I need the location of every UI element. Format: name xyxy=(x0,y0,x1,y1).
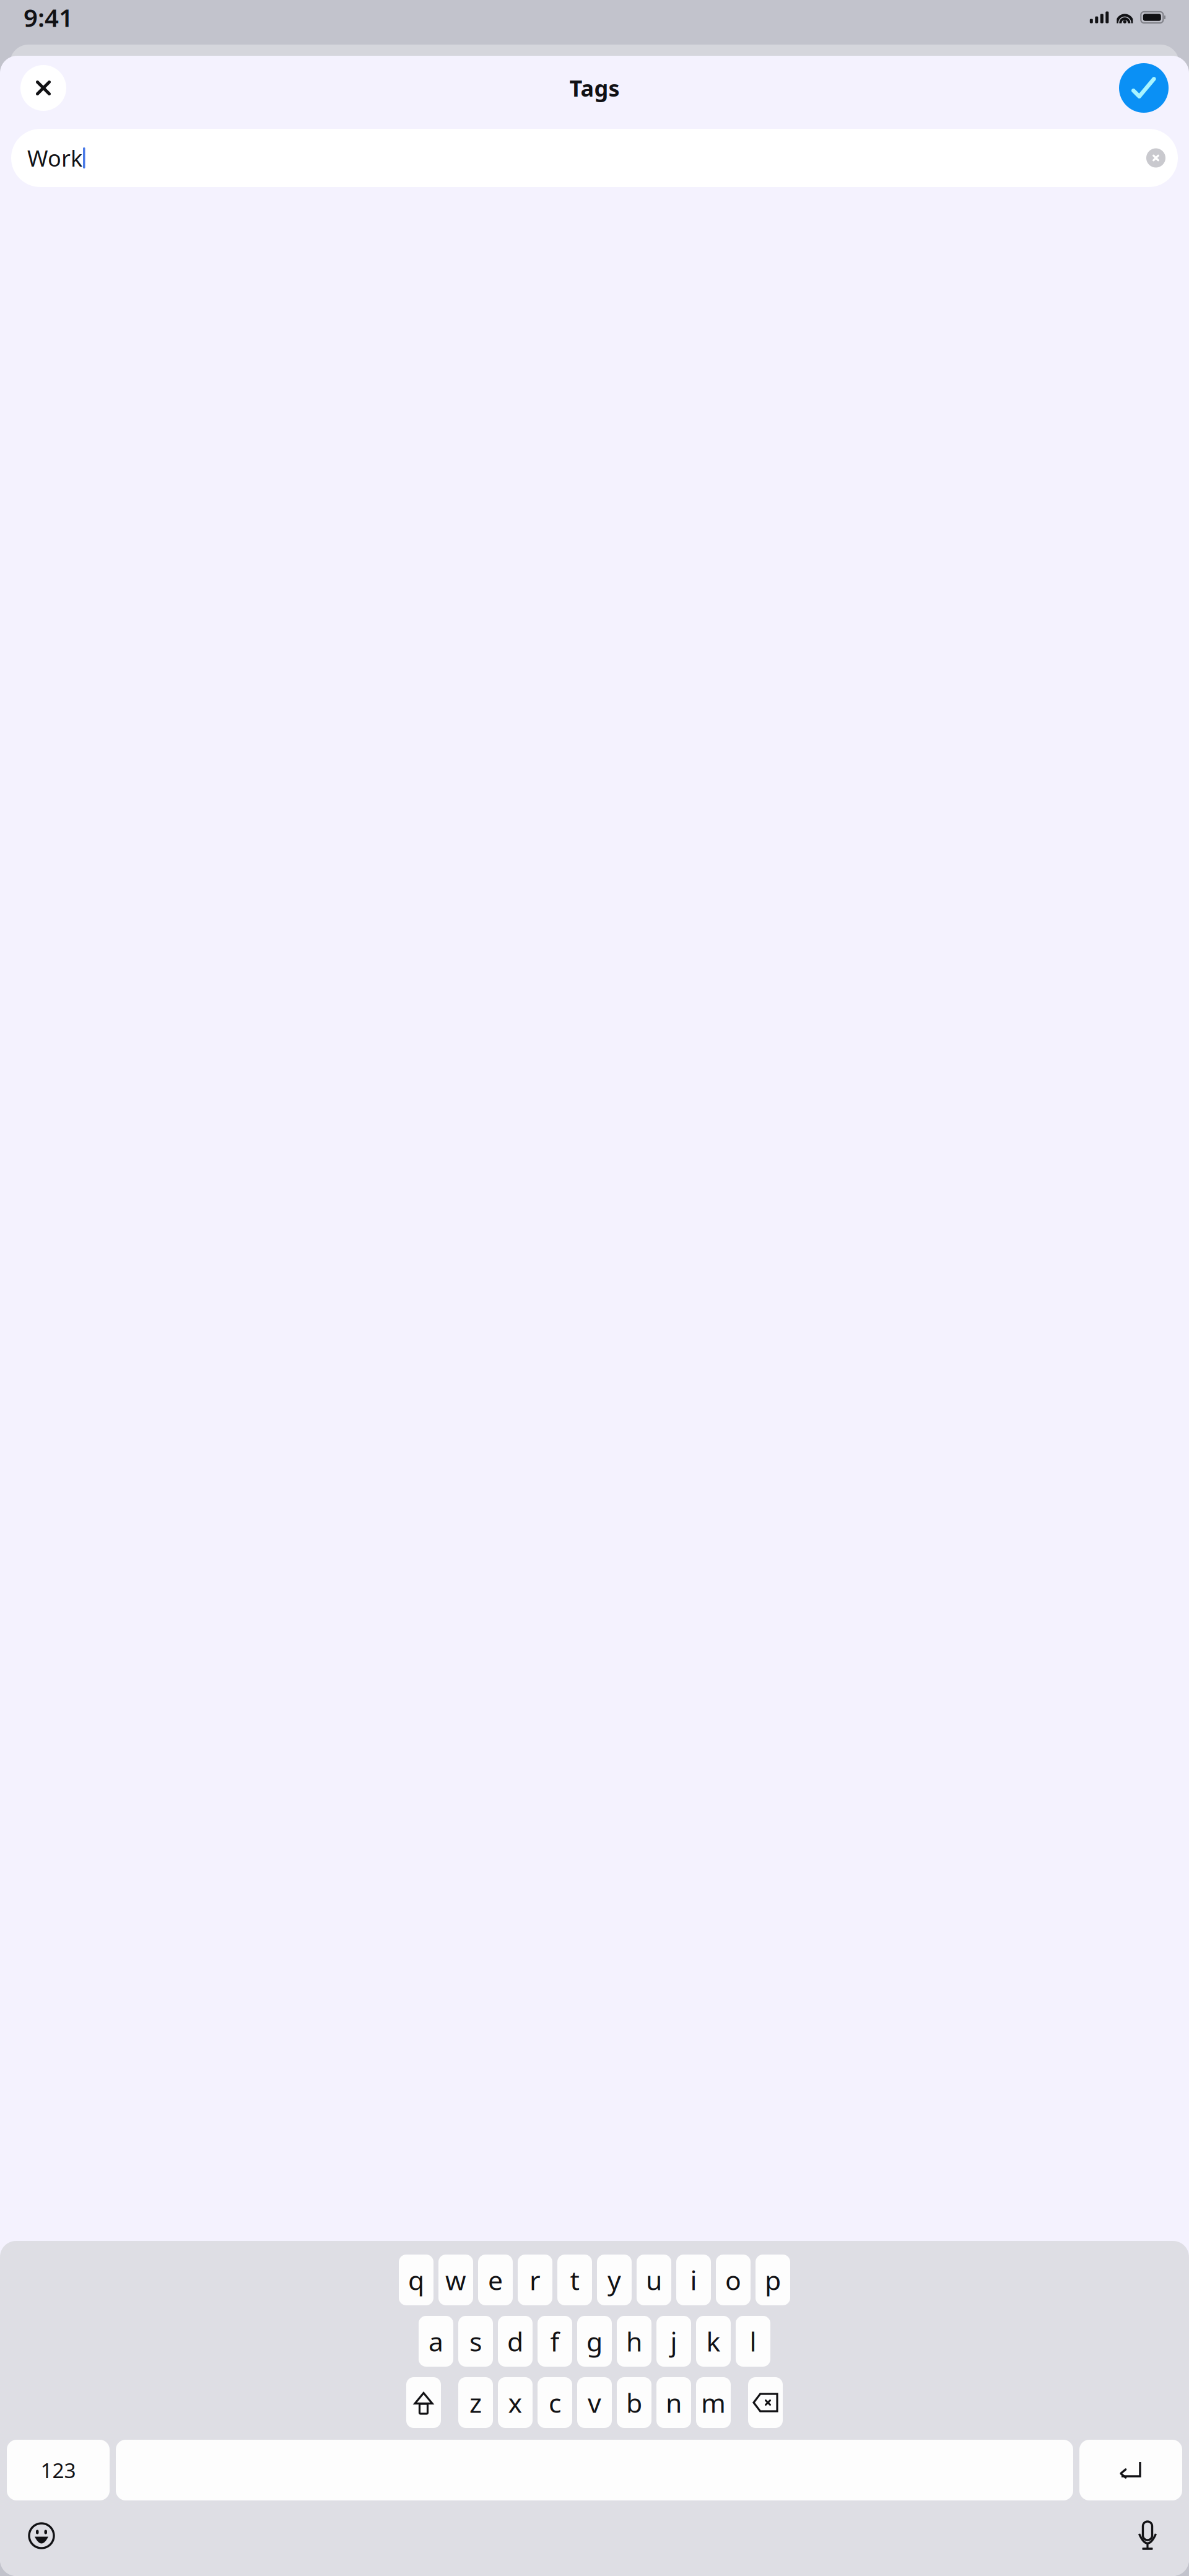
staticText: j xyxy=(670,2324,677,2359)
button[interactable]: r xyxy=(518,2255,552,2305)
button[interactable]: Delete xyxy=(748,2377,783,2428)
staticText: 123 xyxy=(41,2456,76,2484)
button[interactable]: k xyxy=(696,2316,731,2367)
button[interactable]: u xyxy=(637,2255,671,2305)
staticText: m xyxy=(701,2385,726,2420)
button[interactable]: t xyxy=(557,2255,592,2305)
button[interactable]: i xyxy=(676,2255,711,2305)
staticText: d xyxy=(507,2324,523,2359)
button[interactable]: Close xyxy=(20,65,66,111)
button[interactable]: s xyxy=(458,2316,493,2367)
button[interactable]: Emoji keyboard xyxy=(22,2517,61,2555)
staticText: Work xyxy=(27,143,82,173)
button[interactable]: Dictation xyxy=(1128,2517,1167,2555)
button[interactable]: m xyxy=(696,2377,731,2428)
button[interactable]: h xyxy=(617,2316,651,2367)
staticText: g xyxy=(586,2324,603,2359)
button[interactable]: Done xyxy=(1119,63,1169,113)
button[interactable]: p xyxy=(756,2255,790,2305)
button[interactable]: d xyxy=(498,2316,533,2367)
staticText: t xyxy=(570,2262,579,2298)
staticText: a xyxy=(429,2324,443,2359)
button[interactable]: g xyxy=(577,2316,612,2367)
button[interactable]: v xyxy=(577,2377,612,2428)
staticText: 9:41 xyxy=(24,1,73,34)
button[interactable]: f xyxy=(538,2316,572,2367)
staticText: c xyxy=(549,2385,561,2420)
staticText: u xyxy=(646,2262,662,2298)
button[interactable]: b xyxy=(617,2377,651,2428)
button[interactable]: Clear text xyxy=(1146,148,1165,168)
staticText: o xyxy=(725,2262,741,2298)
button[interactable]: y xyxy=(597,2255,632,2305)
staticText: w xyxy=(445,2262,466,2298)
button[interactable]: j xyxy=(656,2316,691,2367)
staticText: f xyxy=(550,2324,560,2359)
button[interactable]: o xyxy=(716,2255,751,2305)
button[interactable]: e xyxy=(478,2255,513,2305)
button[interactable]: a xyxy=(419,2316,453,2367)
staticText: k xyxy=(706,2324,721,2359)
button[interactable]: l xyxy=(736,2316,770,2367)
button[interactable]: Return xyxy=(1079,2440,1182,2500)
staticText: l xyxy=(750,2324,756,2359)
button[interactable]: c xyxy=(538,2377,572,2428)
staticText: p xyxy=(765,2262,781,2298)
staticText: v xyxy=(588,2385,601,2420)
button[interactable]: 123 xyxy=(7,2440,110,2500)
staticText: i xyxy=(690,2262,697,2298)
button[interactable]: q xyxy=(399,2255,433,2305)
staticText: n xyxy=(666,2385,682,2420)
staticText: e xyxy=(488,2262,503,2298)
button[interactable]: z xyxy=(458,2377,493,2428)
staticText: b xyxy=(626,2385,642,2420)
button[interactable]: x xyxy=(498,2377,533,2428)
staticText: s xyxy=(469,2324,482,2359)
staticText: h xyxy=(626,2324,642,2359)
staticText: z xyxy=(469,2385,482,2420)
staticText: Tags xyxy=(569,73,620,103)
staticText: r xyxy=(529,2262,541,2298)
button[interactable]: n xyxy=(656,2377,691,2428)
staticText: q xyxy=(408,2262,424,2298)
staticText: y xyxy=(608,2262,621,2298)
button[interactable]: Shift xyxy=(406,2377,441,2428)
button[interactable]: w xyxy=(438,2255,473,2305)
staticText: x xyxy=(508,2385,522,2420)
